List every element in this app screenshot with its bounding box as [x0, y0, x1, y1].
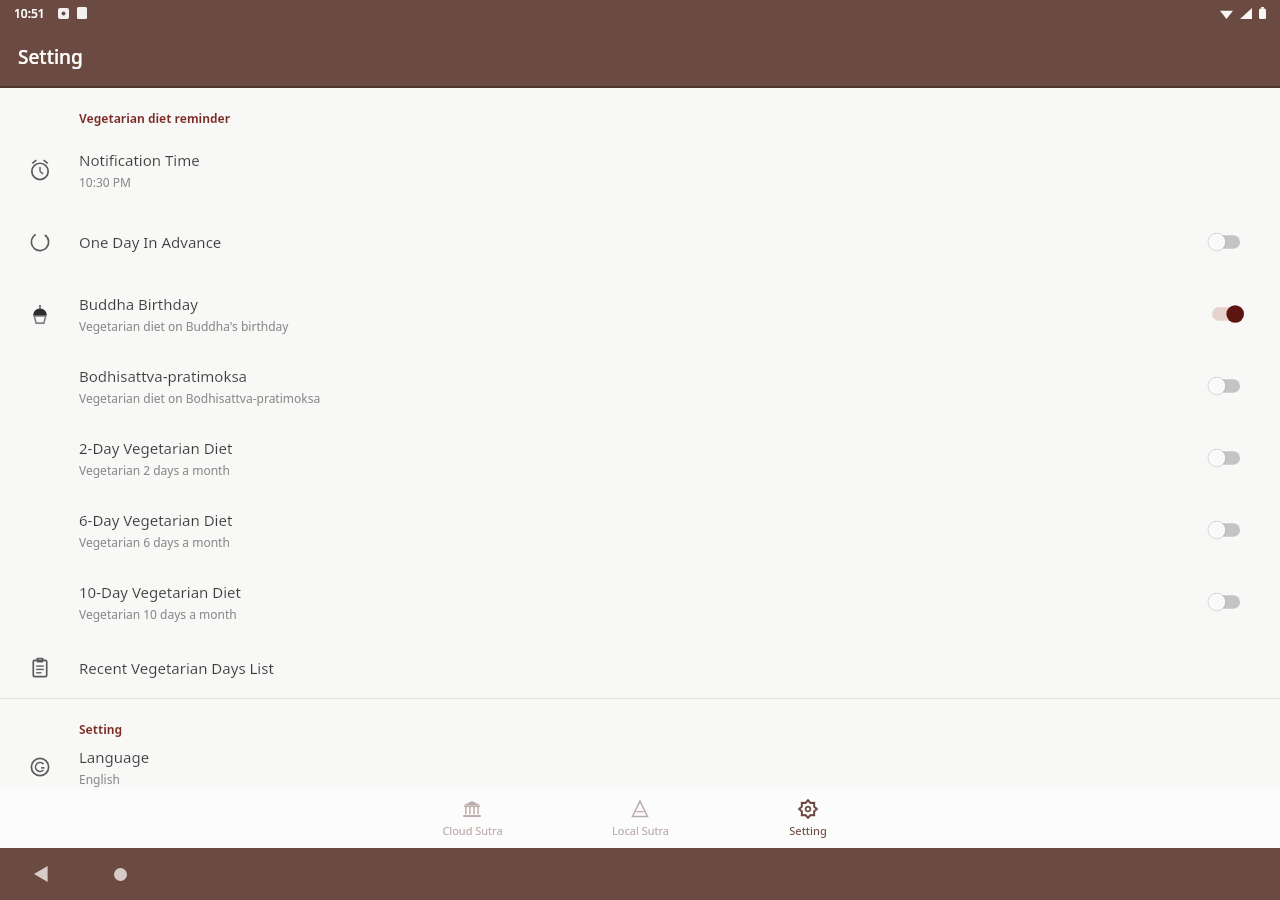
- staticText: Bodhisattva-pratimoksa: [79, 366, 248, 386]
- button[interactable]: Local Sutra: [556, 792, 724, 844]
- button[interactable]: Setting: [724, 792, 892, 844]
- button[interactable]: Language: [0, 745, 1280, 788]
- button[interactable]: 6-Day Vegetarian Diet: [0, 494, 1280, 566]
- staticText: Vegetarian 2 days a month: [79, 462, 230, 478]
- staticText: Local Sutra: [612, 823, 669, 838]
- staticText: Setting: [79, 721, 123, 737]
- button[interactable]: Toggle off: [1205, 371, 1247, 401]
- staticText: Vegetarian diet on Bodhisattva-pratimoks…: [79, 390, 321, 406]
- staticText: Cloud Sutra: [442, 823, 503, 838]
- staticText: One Day In Advance: [79, 232, 222, 252]
- button[interactable]: Home: [108, 862, 132, 886]
- staticText: Recent Vegetarian Days List: [79, 658, 274, 678]
- staticText: Vegetarian diet reminder: [79, 110, 231, 126]
- button[interactable]: Buddha Birthday: [0, 278, 1280, 350]
- staticText: Language: [79, 747, 150, 767]
- staticText: English: [79, 771, 120, 787]
- staticText: Vegetarian diet on Buddha's birthday: [79, 318, 289, 334]
- staticText: Notification Time: [79, 150, 200, 170]
- button[interactable]: Recent Vegetarian Days List: [0, 638, 1280, 698]
- button[interactable]: Bodhisattva-pratimoksa: [0, 350, 1280, 422]
- staticText: Setting: [789, 823, 827, 838]
- button[interactable]: Toggle off: [1205, 515, 1247, 545]
- staticText: 2-Day Vegetarian Diet: [79, 438, 233, 458]
- button[interactable]: Toggle on: [1205, 299, 1247, 329]
- staticText: Vegetarian 6 days a month: [79, 534, 230, 550]
- staticText: Setting: [18, 44, 83, 70]
- button[interactable]: Toggle off: [1205, 443, 1247, 473]
- button[interactable]: 10-Day Vegetarian Diet: [0, 566, 1280, 638]
- staticText: 6-Day Vegetarian Diet: [79, 510, 233, 530]
- staticText: Vegetarian 10 days a month: [79, 606, 237, 622]
- button[interactable]: Cloud Sutra: [388, 792, 556, 844]
- staticText: 10-Day Vegetarian Diet: [79, 582, 241, 602]
- button[interactable]: Back: [30, 862, 54, 886]
- staticText: Buddha Birthday: [79, 294, 198, 314]
- button[interactable]: Notification Time: [0, 134, 1280, 206]
- button[interactable]: Toggle off: [1205, 587, 1247, 617]
- staticText: 10:30 PM: [79, 174, 131, 190]
- button[interactable]: One Day In Advance: [0, 206, 1280, 278]
- button[interactable]: Toggle off: [1205, 227, 1247, 257]
- button[interactable]: 2-Day Vegetarian Diet: [0, 422, 1280, 494]
- staticText: 10:51: [14, 5, 45, 21]
